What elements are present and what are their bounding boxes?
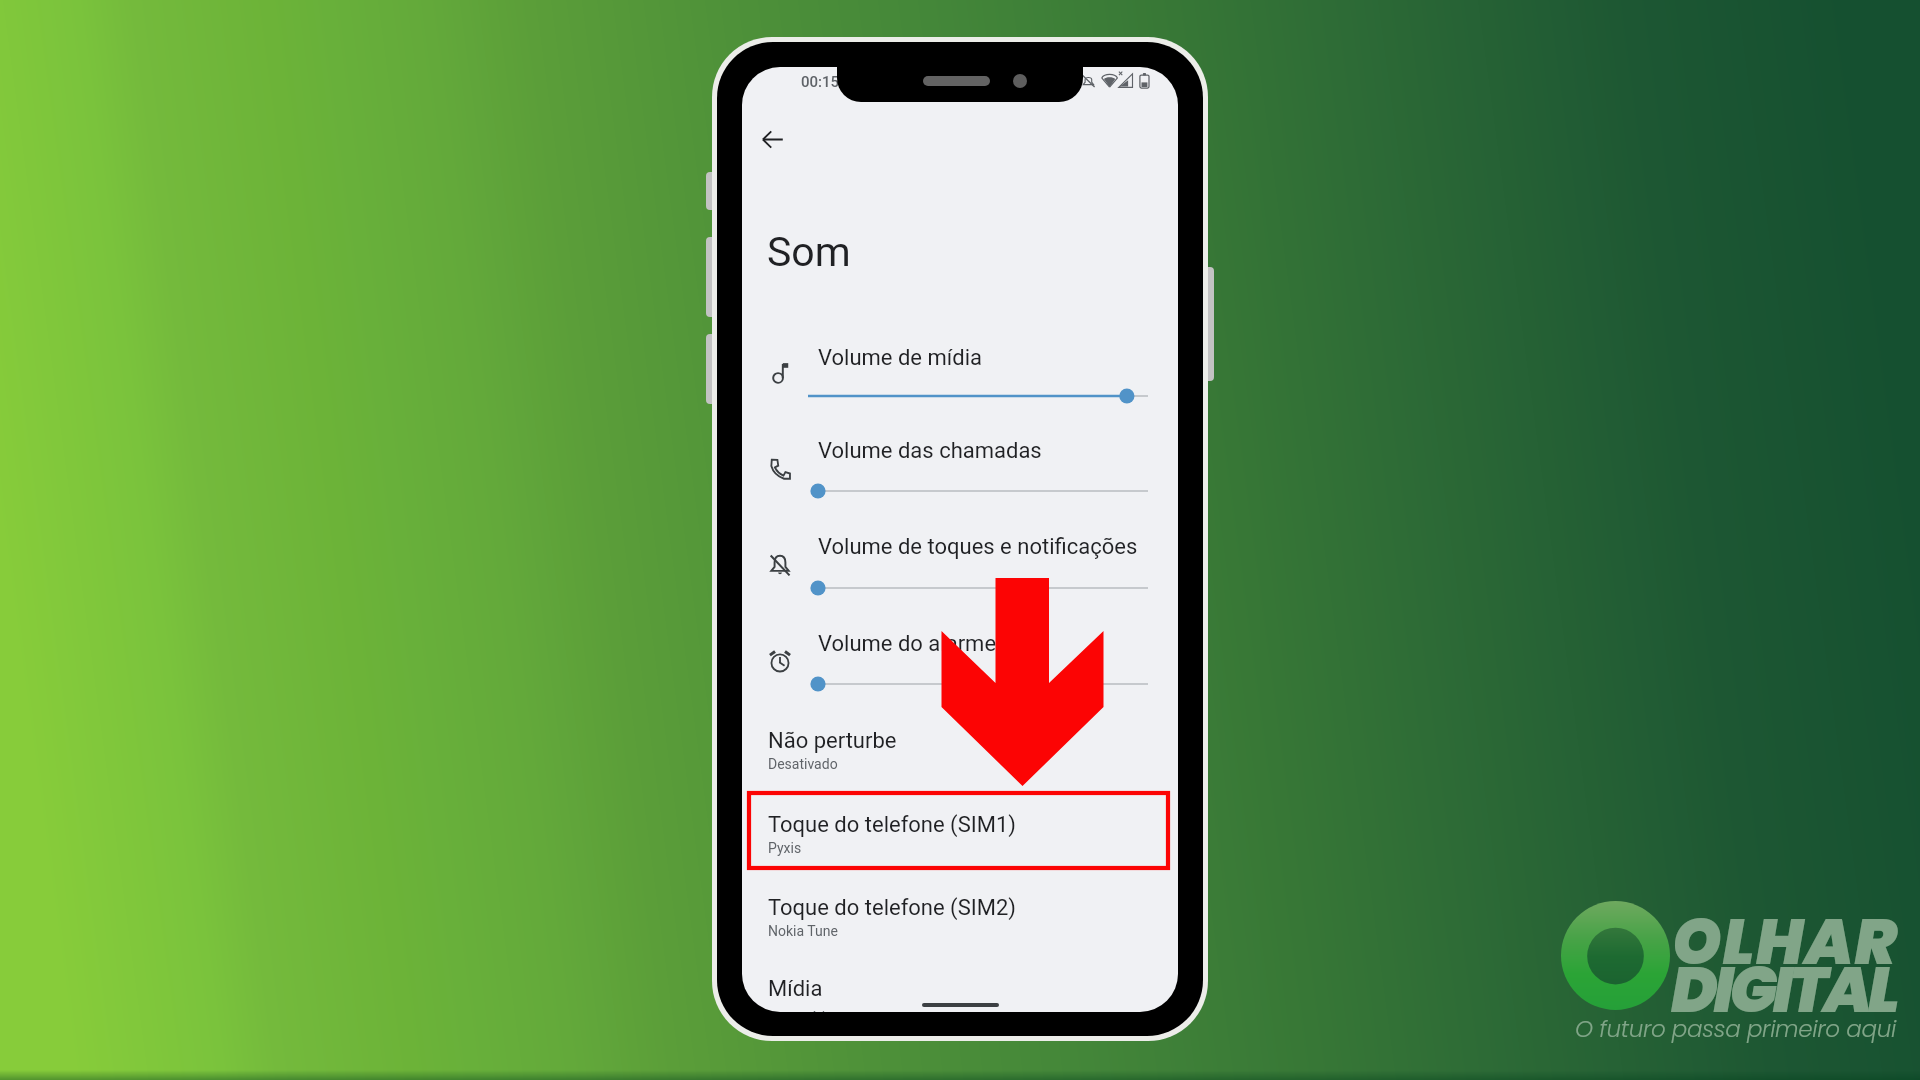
button[interactable]: Volume de toques e notificações — [742, 518, 1178, 612]
staticText: 00:15 — [801, 73, 840, 91]
staticText: Mídia — [768, 976, 823, 1002]
staticText: Nokia Tune — [768, 923, 838, 939]
staticText: Volume de toques e notificações — [818, 534, 1138, 560]
button[interactable]: Mídia — [742, 958, 1178, 1012]
button[interactable]: Volume do alarme — [742, 615, 1178, 709]
staticText: Pyxis — [768, 840, 802, 856]
staticText: Automático — [768, 1009, 841, 1012]
staticText: Toque do telefone (SIM2) — [768, 895, 1016, 921]
button[interactable]: Volume das chamadas — [742, 422, 1178, 516]
staticText: Não perturbe — [768, 728, 897, 754]
button[interactable]: Não perturbe — [742, 708, 1178, 784]
staticText: Volume de mídia — [818, 345, 982, 371]
staticText: Toque do telefone (SIM1) — [768, 812, 1016, 838]
staticText: OLHAR — [1672, 898, 1898, 986]
staticText: O futuro passa primeiro aqui — [1575, 1013, 1896, 1045]
staticText: DIGITAL — [1671, 946, 1896, 1034]
staticText: Som — [767, 228, 851, 276]
staticText: Desativado — [768, 756, 838, 772]
button[interactable]: Volume de mídia — [742, 329, 1178, 423]
staticText: Volume das chamadas — [818, 438, 1042, 464]
staticText: Volume do alarme — [818, 631, 997, 657]
button[interactable]: Toque do telefone (SIM2) — [742, 875, 1178, 951]
button[interactable]: Toque do telefone (SIM1) — [742, 792, 1178, 868]
button[interactable]: Back — [752, 119, 792, 159]
